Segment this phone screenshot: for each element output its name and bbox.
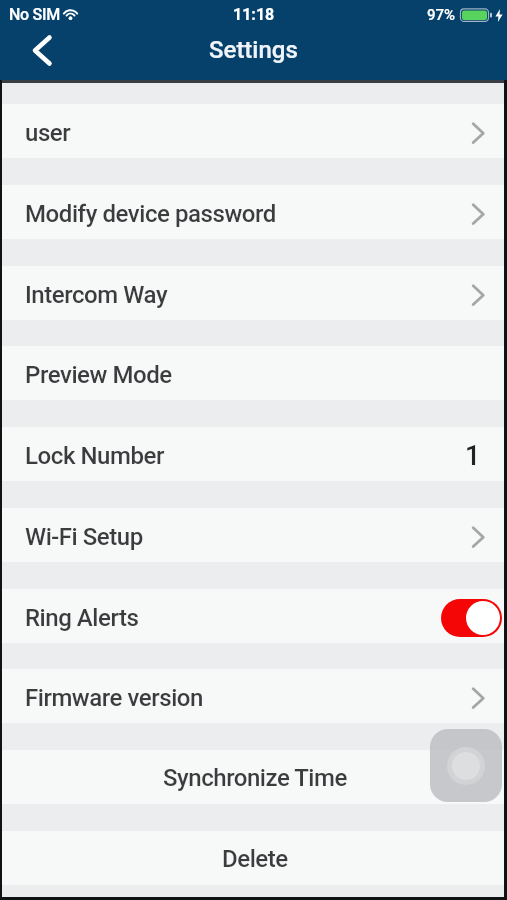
staticText: Intercom Way xyxy=(25,281,168,309)
button[interactable]: Firmware version xyxy=(0,669,507,723)
button[interactable]: Wi-Fi Setup xyxy=(0,508,507,562)
button[interactable]: Synchronize Time xyxy=(0,750,507,804)
button[interactable]: Lock Number xyxy=(0,427,507,481)
staticText: Preview Mode xyxy=(25,361,172,389)
staticText: Ring Alerts xyxy=(25,604,139,632)
staticText: Firmware version xyxy=(25,684,203,712)
button[interactable]: user xyxy=(0,104,507,158)
staticText: Lock Number xyxy=(25,442,164,470)
button[interactable]: Modify device password xyxy=(0,185,507,239)
button[interactable]: Intercom Way xyxy=(0,266,507,320)
button[interactable]: Delete xyxy=(0,831,507,885)
button[interactable] xyxy=(441,599,502,637)
staticText: 11:18 xyxy=(233,5,275,24)
staticText: Settings xyxy=(209,36,298,64)
staticText: Wi-Fi Setup xyxy=(25,523,143,551)
staticText: Delete xyxy=(222,845,288,873)
staticText: 97% xyxy=(427,6,456,24)
button[interactable]: Ring Alerts xyxy=(0,589,507,643)
button[interactable] xyxy=(430,729,502,802)
staticText: Synchronize Time xyxy=(163,764,347,792)
staticText: user xyxy=(25,119,71,147)
button[interactable]: Preview Mode xyxy=(0,346,507,400)
staticText: 1 xyxy=(465,440,481,472)
staticText: Modify device password xyxy=(25,200,276,228)
button[interactable] xyxy=(26,30,58,70)
staticText: No SIM xyxy=(9,5,60,24)
